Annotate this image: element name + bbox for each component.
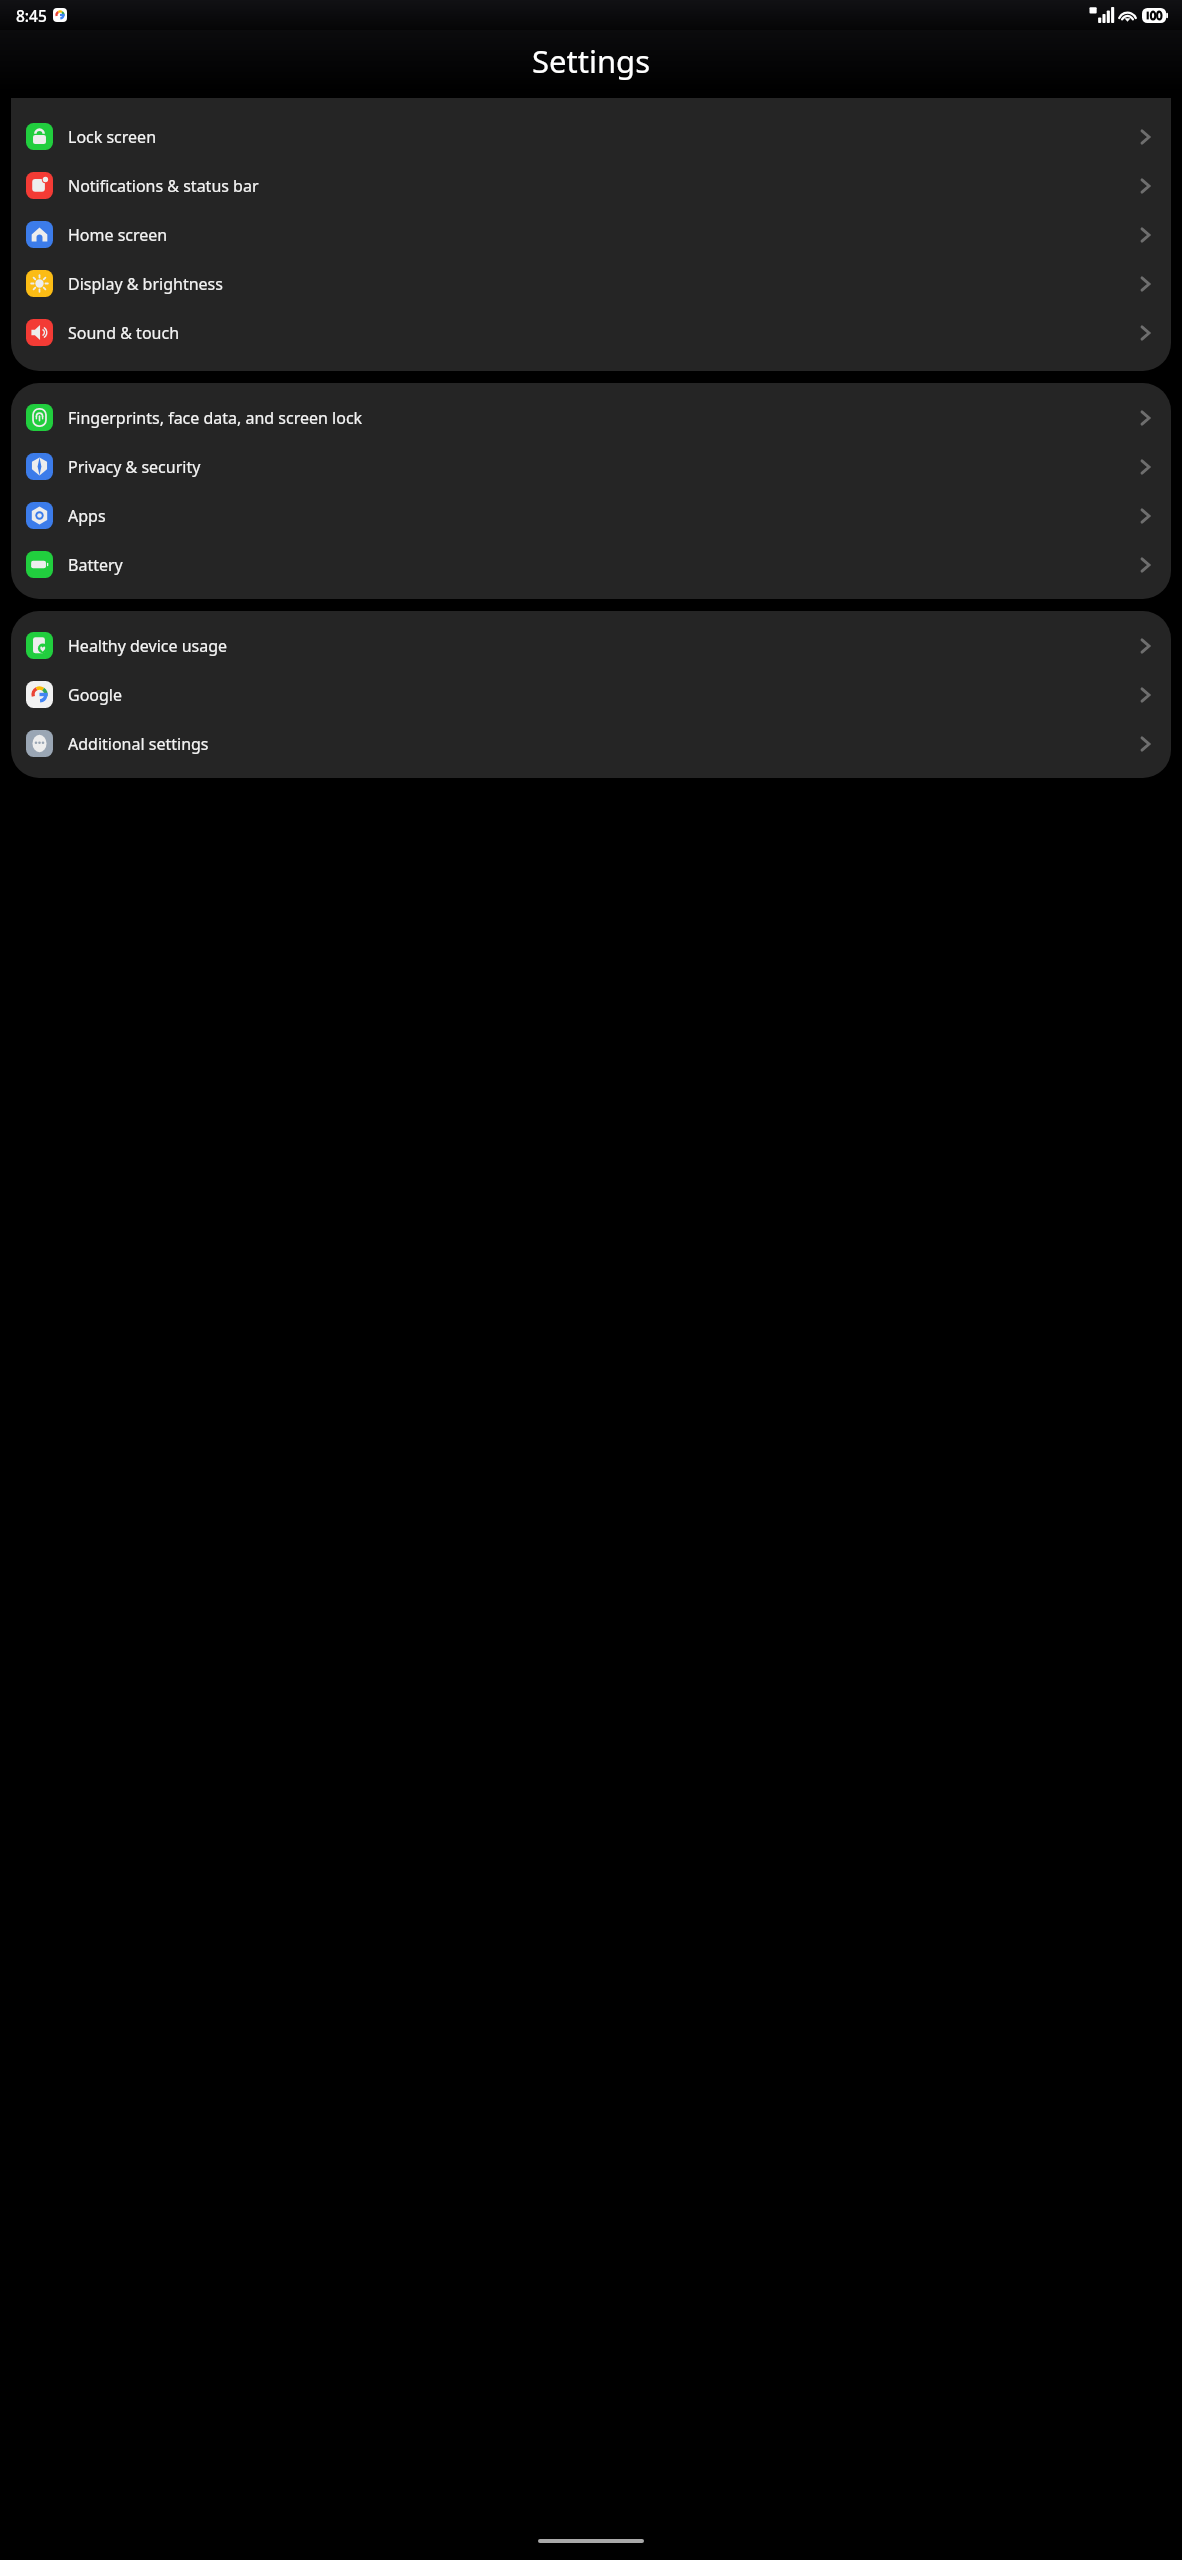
other: Notifications and status bar: [26, 172, 53, 199]
other: Healthy device usage: [26, 632, 53, 659]
other: Additional settings: [26, 730, 53, 757]
other: Google: [26, 681, 53, 708]
staticText: 8:45: [16, 5, 47, 26]
staticText: Additional settings: [68, 733, 1130, 755]
staticText: Lock screen: [68, 126, 1130, 148]
button[interactable]: Lock screen: [11, 112, 1171, 161]
other: Privacy and security: [26, 453, 53, 480]
staticText: Display & brightness: [68, 273, 1130, 295]
other: Apps: [26, 502, 53, 529]
button[interactable]: Healthy device usage: [11, 621, 1171, 670]
staticText: Home screen: [68, 224, 1130, 246]
staticText: Apps: [68, 505, 1130, 527]
button[interactable]: Display and brightness: [11, 259, 1171, 308]
other: Home screen: [26, 221, 53, 248]
button[interactable]: Sound and touch: [11, 308, 1171, 357]
button[interactable]: Battery: [11, 540, 1171, 589]
button[interactable]: Apps: [11, 491, 1171, 540]
staticText: Settings: [532, 40, 650, 82]
staticText: Notifications & status bar: [68, 175, 1130, 197]
other: Lock screen: [26, 123, 53, 150]
other: Fingerprints, face data, and screen lock: [26, 404, 53, 431]
button[interactable]: Home screen: [11, 210, 1171, 259]
staticText: Fingerprints, face data, and screen lock: [68, 407, 1130, 429]
staticText: Google: [68, 684, 1130, 706]
button[interactable]: Privacy and security: [11, 442, 1171, 491]
staticText: Sound & touch: [68, 322, 1130, 344]
button[interactable]: Google: [11, 670, 1171, 719]
button[interactable]: Notifications and status bar: [11, 161, 1171, 210]
other: Sound and touch: [26, 319, 53, 346]
button[interactable]: Additional settings: [11, 719, 1171, 768]
other: Battery: [26, 551, 53, 578]
staticText: Battery: [68, 554, 1130, 576]
staticText: Healthy device usage: [68, 635, 1130, 657]
button[interactable]: Fingerprints, face data, and screen lock: [11, 393, 1171, 442]
staticText: Privacy & security: [68, 456, 1130, 478]
other: Display and brightness: [26, 270, 53, 297]
